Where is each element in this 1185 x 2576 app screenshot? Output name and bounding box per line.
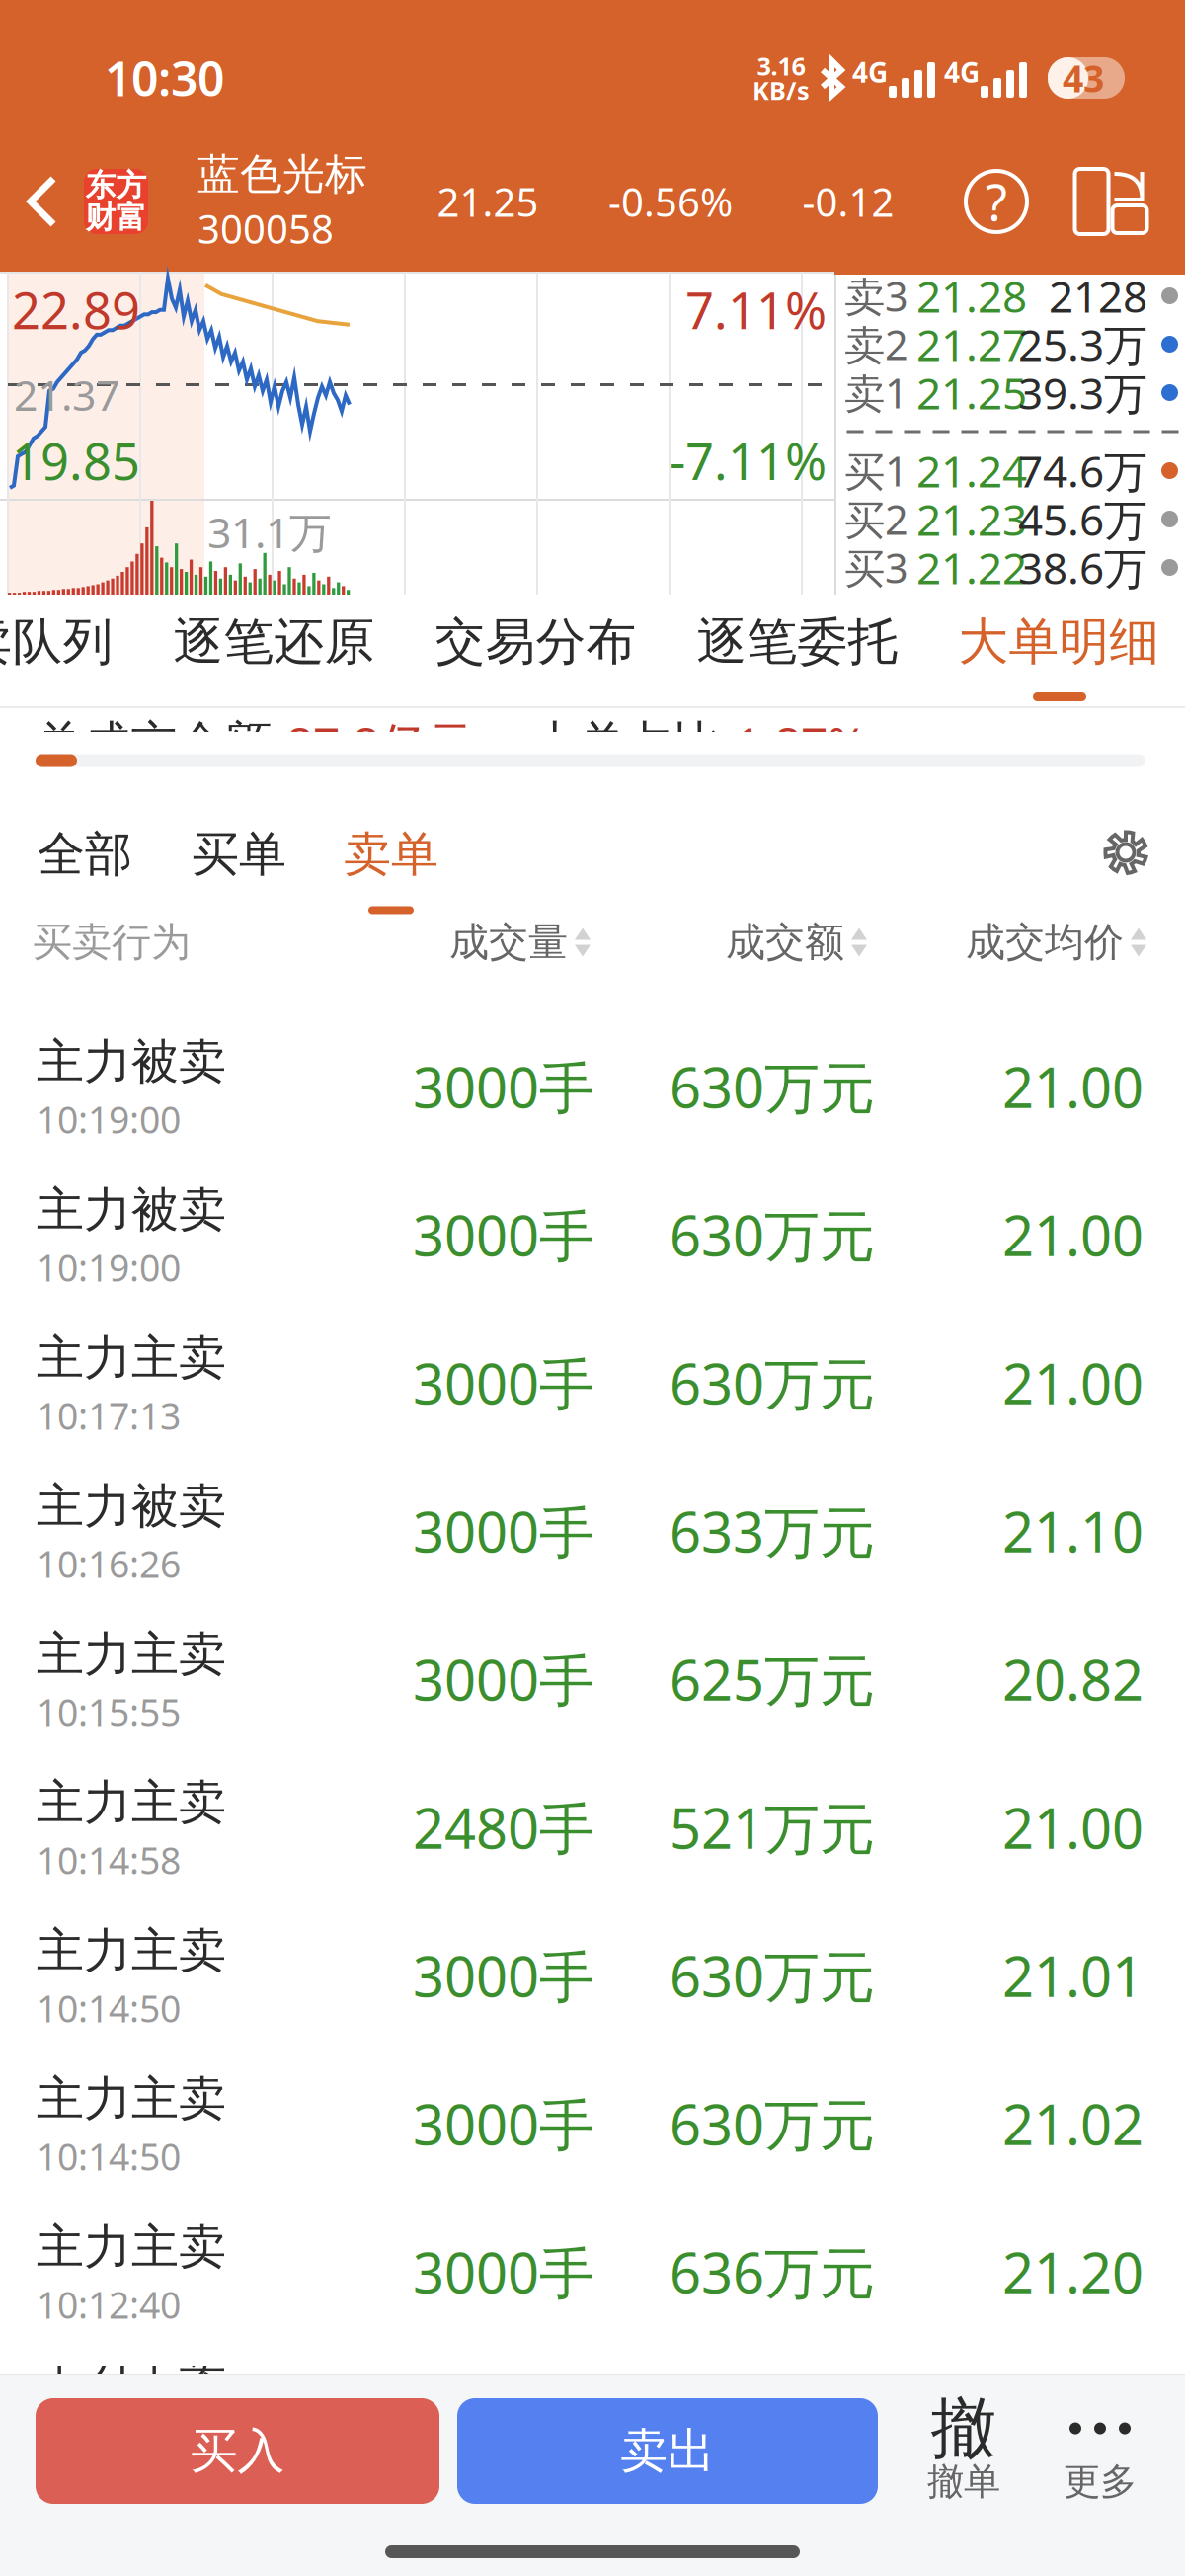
- staticText: 45.6万: [1018, 490, 1147, 548]
- staticText: 主力被卖: [37, 1181, 226, 1239]
- button[interactable]: 逐笔委托: [697, 595, 898, 689]
- staticText: 主力主卖: [37, 1329, 226, 1387]
- staticText: 4G: [852, 54, 888, 90]
- button[interactable]: 主力被卖: [0, 1012, 1185, 1161]
- staticText: 10:16:26: [37, 1539, 181, 1588]
- button[interactable]: 买卖队列: [0, 595, 113, 689]
- staticText: 21.25: [916, 364, 1027, 421]
- staticText: 630万元: [670, 1939, 875, 2012]
- staticText: 卖单: [344, 825, 438, 884]
- staticText: 成交额: [726, 918, 844, 966]
- staticText: 买1: [844, 444, 908, 498]
- staticText: 21.27: [916, 315, 1027, 373]
- staticText: 买卖行为: [33, 918, 191, 966]
- staticText: 633万元: [670, 1494, 875, 1568]
- staticText: 买2: [844, 492, 908, 546]
- staticText: 10:30: [105, 47, 224, 109]
- button[interactable]: 主力主卖: [0, 1901, 1185, 2050]
- staticText: 买单: [192, 825, 286, 884]
- staticText: 全部: [38, 825, 132, 884]
- staticText: 21.37: [14, 366, 119, 422]
- button[interactable]: 主力被卖: [0, 1457, 1185, 1605]
- staticText: 财富: [85, 199, 147, 236]
- button[interactable]: 买单: [192, 787, 286, 918]
- staticText: 东方: [85, 167, 147, 204]
- staticText: 43: [1063, 54, 1104, 103]
- button[interactable]: 全部: [38, 787, 132, 918]
- staticText: 主力主卖: [37, 2070, 226, 2128]
- staticText: 3000手: [413, 2235, 594, 2309]
- button[interactable]: 主力主卖: [0, 1753, 1185, 1901]
- staticText: 买卖队列: [0, 611, 113, 673]
- staticText: 主力主卖: [37, 1773, 226, 1832]
- staticText: 成交均价: [966, 918, 1124, 966]
- staticText: 10:12:40: [37, 2280, 181, 2329]
- staticText: 630万元: [670, 1198, 875, 1271]
- staticText: 630万元: [670, 1050, 875, 1123]
- staticText: 10:14:50: [37, 1984, 181, 2033]
- button[interactable]: Rotate screen: [1055, 168, 1130, 235]
- staticText: 主力主卖: [37, 1625, 226, 1684]
- staticText: 3000手: [413, 1346, 594, 1420]
- button[interactable]: 撤: [914, 2398, 1013, 2504]
- staticText: 1.87%: [735, 712, 867, 775]
- staticText: 10:14:50: [37, 2132, 181, 2181]
- staticText: 21.02: [1002, 2087, 1144, 2160]
- staticText: 21.00: [1002, 1346, 1144, 1420]
- staticText: 总成交金额: [36, 715, 273, 773]
- staticText: 21.00: [1002, 1791, 1144, 1864]
- staticText: -7.11%: [670, 427, 827, 494]
- staticText: 2128: [1049, 267, 1147, 325]
- staticText: 撤单: [927, 2459, 1000, 2504]
- staticText: ?: [986, 168, 1007, 235]
- staticText: 10:19:00: [37, 1243, 181, 1292]
- button[interactable]: 卖单: [344, 787, 438, 918]
- button[interactable]: 大单明细: [958, 595, 1160, 689]
- button[interactable]: 逐笔还原: [173, 595, 375, 689]
- staticText: 39.3万: [1018, 364, 1147, 421]
- staticText: 21.24: [916, 442, 1027, 499]
- staticText: 主力被卖: [37, 1033, 226, 1091]
- button[interactable]: 主力主卖: [0, 2198, 1185, 2346]
- staticText: 25.3万: [1018, 315, 1147, 373]
- button[interactable]: Help: [964, 169, 1029, 234]
- button[interactable]: 主力主卖: [0, 1605, 1185, 1753]
- staticText: 3.16: [757, 49, 805, 82]
- button[interactable]: Settings: [1100, 827, 1151, 878]
- staticText: 卖出: [620, 2422, 715, 2480]
- staticText: 636万元: [670, 2235, 875, 2309]
- staticText: 10:14:58: [37, 1835, 181, 1884]
- button[interactable]: 买入: [36, 2398, 439, 2504]
- button[interactable]: Back: [0, 142, 84, 261]
- staticText: 31.1万: [207, 504, 332, 560]
- button[interactable]: 主力被卖: [0, 1161, 1185, 1309]
- button[interactable]: 卖出: [457, 2398, 878, 2504]
- staticText: 撤: [931, 2388, 997, 2469]
- staticText: 21.00: [1002, 1198, 1144, 1271]
- staticText: KB/s: [752, 74, 810, 107]
- staticText: 大单占比: [531, 715, 721, 773]
- staticText: 21.25: [437, 175, 539, 228]
- staticText: 成交量: [449, 918, 568, 966]
- staticText: 21.22: [916, 539, 1027, 596]
- staticText: 10:15:55: [37, 1687, 181, 1736]
- staticText: 21.00: [1002, 1050, 1144, 1123]
- staticText: 3000手: [413, 2087, 594, 2160]
- staticText: 主力主卖: [37, 2218, 226, 2276]
- staticText: 买入: [190, 2422, 285, 2480]
- staticText: 521万元: [670, 1791, 875, 1864]
- staticText: 3000手: [413, 1198, 594, 1271]
- staticText: 630万元: [670, 1346, 875, 1420]
- staticText: 7.11%: [685, 277, 827, 343]
- button[interactable]: 主力主卖: [0, 2050, 1185, 2198]
- button[interactable]: 更多: [1051, 2398, 1149, 2504]
- staticText: 74.6万: [1018, 442, 1147, 499]
- button[interactable]: 主力主卖: [0, 1309, 1185, 1457]
- button[interactable]: 交易分布: [435, 595, 636, 689]
- staticText: 10:19:00: [37, 1095, 181, 1144]
- staticText: 21.01: [1002, 1939, 1144, 2012]
- staticText: 主力主卖: [37, 1922, 226, 1980]
- staticText: 交易分布: [435, 611, 636, 673]
- staticText: 3000手: [413, 1642, 594, 1716]
- staticText: 630万元: [670, 2087, 875, 2160]
